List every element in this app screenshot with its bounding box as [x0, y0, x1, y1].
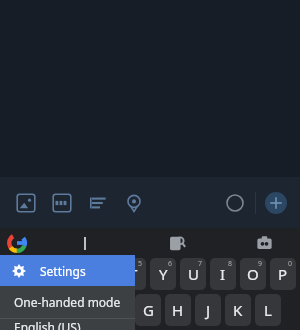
staticText: H [172, 300, 184, 320]
staticText: One-handed mode [14, 294, 121, 310]
staticText: 0 [288, 259, 293, 269]
button[interactable]: Insert image [8, 185, 44, 221]
staticText: Settings [40, 263, 86, 279]
button[interactable]: Stickers [164, 230, 190, 256]
button[interactable]: Settings [0, 255, 135, 286]
button[interactable]: English (US) [0, 319, 135, 330]
button[interactable]: I [210, 258, 236, 290]
staticText: L [264, 300, 272, 320]
button[interactable]: Formatting [80, 185, 116, 221]
staticText: J [206, 300, 211, 320]
staticText: English (US) [14, 319, 81, 330]
button[interactable]: Insert GIF [44, 185, 80, 221]
staticText: I [220, 264, 226, 284]
button[interactable]: J [195, 294, 221, 326]
button[interactable]: H [165, 294, 191, 326]
staticText: 5 [138, 259, 143, 269]
staticText: U [188, 264, 199, 284]
staticText: K [233, 300, 243, 320]
button[interactable]: Clipboard [251, 230, 277, 256]
staticText: 7 [198, 259, 203, 269]
button[interactable]: K [225, 294, 251, 326]
button[interactable]: U [180, 258, 206, 290]
button[interactable]: Y [150, 258, 176, 290]
staticText: T [129, 264, 138, 284]
button[interactable]: L [255, 294, 281, 326]
staticText: 8 [228, 259, 233, 269]
button[interactable]: P [270, 258, 296, 290]
staticText: 9 [258, 259, 263, 269]
button[interactable]: T [120, 258, 146, 290]
button[interactable]: O [240, 258, 266, 290]
staticText: G [143, 300, 154, 320]
button[interactable]: Add [258, 185, 294, 221]
button[interactable]: Record [217, 185, 253, 221]
staticText: O [247, 264, 259, 284]
button[interactable]: Google [4, 230, 30, 256]
staticText: Y [159, 264, 168, 284]
staticText: 6 [168, 259, 173, 269]
button[interactable]: One-handed mode [0, 286, 135, 318]
button[interactable]: Share location [116, 185, 152, 221]
button[interactable]: G [135, 294, 161, 326]
staticText: P [278, 264, 288, 284]
